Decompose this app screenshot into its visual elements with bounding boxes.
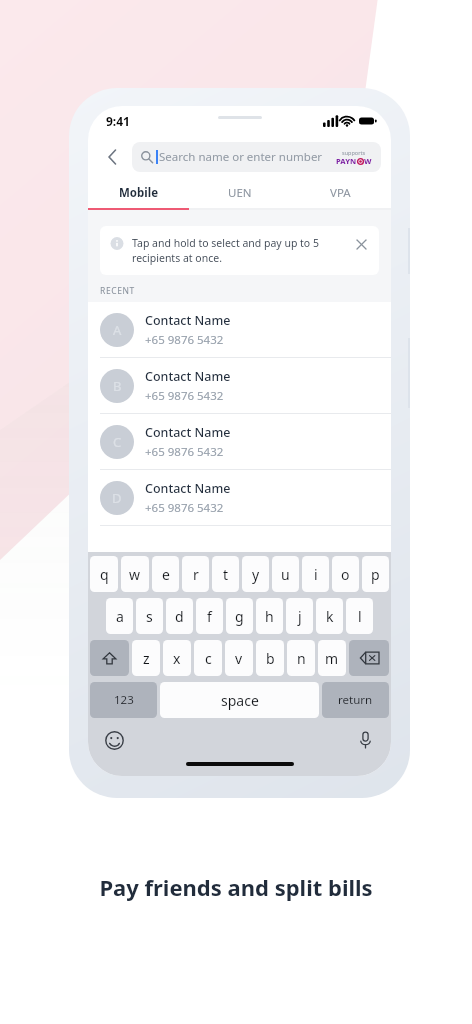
button[interactable]: d <box>166 598 193 634</box>
staticText: m <box>325 649 339 668</box>
button[interactable]: Emoji <box>102 728 126 752</box>
staticText: Contact Name <box>145 312 231 329</box>
button[interactable]: t <box>212 556 239 592</box>
staticText: b <box>266 649 275 668</box>
button[interactable]: space <box>160 682 319 718</box>
staticText: o <box>341 565 350 584</box>
staticText: f <box>207 607 212 626</box>
button[interactable]: l <box>346 598 373 634</box>
staticText: u <box>281 565 290 584</box>
staticText: UEN <box>228 185 252 201</box>
button[interactable]: b <box>256 640 284 676</box>
staticText: Contact Name <box>145 480 231 497</box>
button[interactable]: Mobile <box>88 178 189 208</box>
button[interactable]: D <box>88 470 391 526</box>
button[interactable]: j <box>286 598 313 634</box>
staticText: Tap and hold to select and pay up to 5 r… <box>132 236 347 265</box>
staticText: t <box>223 565 229 584</box>
staticText: h <box>265 607 274 626</box>
staticText: Pay friends and split bills <box>0 872 472 902</box>
staticText: B <box>113 377 122 395</box>
staticText: k <box>326 607 334 626</box>
button[interactable]: e <box>152 556 179 592</box>
staticText: D <box>112 489 122 507</box>
staticText: y <box>252 565 260 584</box>
staticText: W <box>364 156 372 166</box>
button[interactable]: r <box>182 556 209 592</box>
button[interactable]: Dismiss <box>353 236 369 252</box>
staticText: 123 <box>114 692 134 708</box>
staticText: +65 9876 5432 <box>145 388 224 404</box>
button[interactable]: o <box>332 556 359 592</box>
staticText: q <box>100 565 109 584</box>
button[interactable]: p <box>362 556 389 592</box>
button[interactable]: B <box>88 358 391 414</box>
staticText: PAYN <box>336 156 357 166</box>
button[interactable]: UEN <box>189 178 290 208</box>
staticText: Contact Name <box>145 424 231 441</box>
button[interactable]: g <box>226 598 253 634</box>
button[interactable]: Back <box>98 142 128 172</box>
staticText: C <box>113 433 122 451</box>
button[interactable]: a <box>106 598 133 634</box>
button[interactable]: q <box>90 556 118 592</box>
staticText: Contact Name <box>145 368 231 385</box>
button[interactable]: h <box>256 598 283 634</box>
staticText: +65 9876 5432 <box>145 500 224 516</box>
staticText: n <box>297 649 306 668</box>
staticText: space <box>221 691 259 710</box>
button[interactable]: return <box>322 682 389 718</box>
staticText: p <box>371 565 380 584</box>
button[interactable]: Backspace <box>349 640 389 676</box>
button[interactable]: C <box>88 414 391 470</box>
staticText: z <box>143 649 150 668</box>
button[interactable]: m <box>318 640 346 676</box>
button[interactable]: i <box>302 556 329 592</box>
staticText: Search name or enter number <box>159 149 323 165</box>
staticText: a <box>116 607 124 626</box>
button[interactable]: s <box>136 598 163 634</box>
staticText: VPA <box>330 185 351 201</box>
staticText: i <box>314 565 318 584</box>
staticText: v <box>235 649 243 668</box>
button[interactable]: A <box>88 302 391 358</box>
staticText: return <box>338 692 373 708</box>
staticText: l <box>358 607 362 626</box>
staticText: +65 9876 5432 <box>145 332 224 348</box>
staticText: r <box>193 565 199 584</box>
button[interactable]: y <box>242 556 269 592</box>
staticText: supports <box>342 149 366 156</box>
button[interactable]: f <box>196 598 223 634</box>
button[interactable]: u <box>272 556 299 592</box>
staticText: w <box>129 565 141 584</box>
staticText: s <box>146 607 153 626</box>
staticText: j <box>298 607 302 626</box>
button[interactable]: k <box>316 598 343 634</box>
button[interactable]: 123 <box>90 682 157 718</box>
button[interactable]: w <box>121 556 149 592</box>
button[interactable]: Search name or enter number <box>132 142 381 172</box>
button[interactable]: z <box>132 640 160 676</box>
button[interactable]: VPA <box>290 178 391 208</box>
staticText: d <box>175 607 184 626</box>
staticText: x <box>173 649 181 668</box>
staticText: RECENT <box>100 285 135 297</box>
button[interactable]: x <box>163 640 191 676</box>
staticText: e <box>162 565 170 584</box>
button[interactable]: v <box>225 640 253 676</box>
staticText: +65 9876 5432 <box>145 444 224 460</box>
button[interactable]: Shift <box>90 640 129 676</box>
staticText: g <box>235 607 244 626</box>
staticText: c <box>205 649 212 668</box>
button[interactable]: c <box>194 640 222 676</box>
button[interactable]: Dictation <box>353 728 377 752</box>
staticText: 9:41 <box>106 113 130 129</box>
staticText: A <box>113 321 122 339</box>
button[interactable]: n <box>287 640 315 676</box>
staticText: Mobile <box>119 185 159 201</box>
